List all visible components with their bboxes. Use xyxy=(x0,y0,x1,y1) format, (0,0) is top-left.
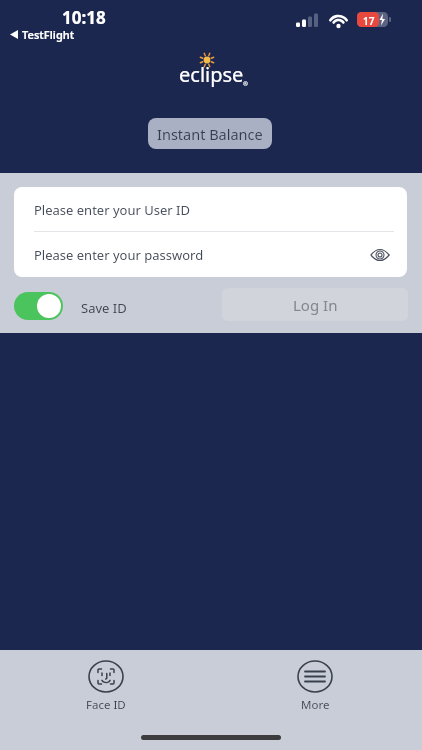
button[interactable]: Please enter your User ID xyxy=(14,187,407,232)
staticText: More xyxy=(301,697,330,713)
staticText: TestFlight xyxy=(22,27,75,42)
staticText: Save ID xyxy=(81,299,127,317)
button[interactable]: Instant Balance xyxy=(148,118,272,149)
staticText: 17 xyxy=(363,14,375,28)
staticText: 10:18 xyxy=(62,6,106,29)
button[interactable]: Log In xyxy=(222,288,408,321)
staticText: Log In xyxy=(293,295,338,315)
staticText: Instant Balance xyxy=(157,124,263,144)
button[interactable]: More xyxy=(292,660,338,713)
button[interactable]: Face ID xyxy=(78,660,133,713)
button[interactable] xyxy=(14,292,63,320)
staticText: ® xyxy=(243,80,248,88)
staticText: Please enter your password xyxy=(34,246,204,264)
staticText: eclipse xyxy=(179,61,244,88)
button[interactable]: Please enter your password xyxy=(14,232,407,277)
staticText: Please enter your User ID xyxy=(34,201,190,219)
staticText: Face ID xyxy=(86,697,126,713)
